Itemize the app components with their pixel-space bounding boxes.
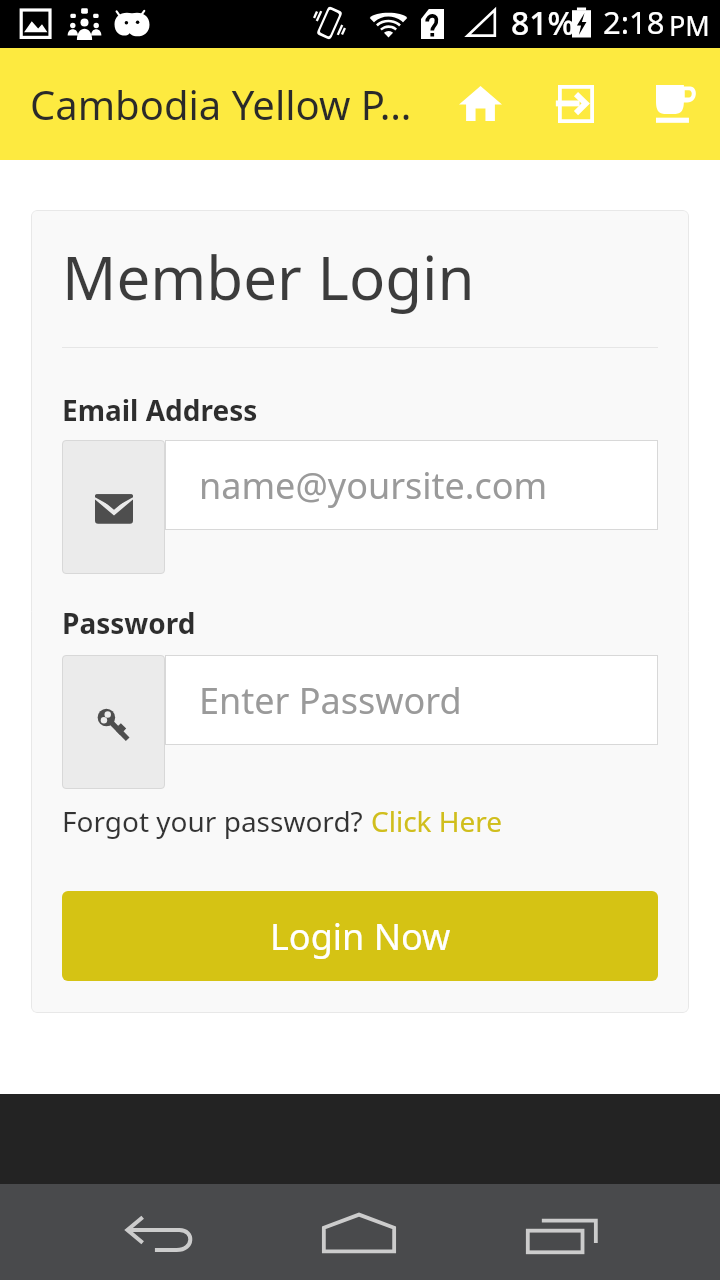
button[interactable]: Click Here [371, 802, 503, 840]
button[interactable]: Enter Password [165, 655, 658, 745]
staticText: Cambodia Yellow P… [30, 77, 412, 131]
staticText: name@yoursite.com [199, 461, 548, 510]
staticText: Member Login [62, 236, 475, 318]
staticText: Email Address [62, 391, 258, 429]
staticText: 2:18 [603, 1, 665, 43]
staticText: Login Now [270, 912, 451, 961]
staticText: Forgot your password? [62, 802, 371, 840]
button[interactable]: Recents [500, 1192, 620, 1272]
button[interactable]: Home [300, 1192, 420, 1272]
button[interactable]: Login Now [62, 891, 658, 981]
button[interactable]: name@yoursite.com [165, 440, 658, 530]
button[interactable]: Login [528, 54, 624, 148]
staticText: 81% [511, 1, 575, 45]
staticText: Enter Password [199, 676, 462, 725]
staticText: Password [62, 604, 196, 642]
button[interactable]: Coffee [624, 54, 720, 148]
button[interactable]: Home [432, 54, 528, 148]
button[interactable]: Back [100, 1192, 220, 1272]
staticText: PM [669, 7, 710, 44]
